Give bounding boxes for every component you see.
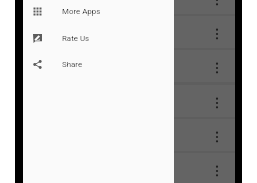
staticText: Share	[62, 60, 83, 69]
button[interactable]: More options	[214, 28, 220, 40]
button[interactable]: More options	[214, 131, 220, 143]
button[interactable]: Rate Us	[23, 25, 174, 51]
staticText: Rate Us	[62, 34, 90, 43]
button[interactable]: More options	[174, 153, 235, 183]
button[interactable]: More options	[214, 0, 220, 6]
button[interactable]: More options	[214, 62, 220, 74]
button[interactable]: More options	[174, 85, 235, 117]
button[interactable]: More Apps	[23, 0, 174, 24]
button[interactable]: Share	[23, 51, 174, 77]
staticText: More Apps	[62, 7, 101, 16]
button[interactable]: More options	[174, 119, 235, 151]
button[interactable]: More options	[174, 16, 235, 48]
button[interactable]: More options	[174, 0, 235, 14]
button[interactable]: More options	[214, 165, 220, 177]
button[interactable]: More options	[174, 50, 235, 82]
button[interactable]: More options	[214, 97, 220, 109]
